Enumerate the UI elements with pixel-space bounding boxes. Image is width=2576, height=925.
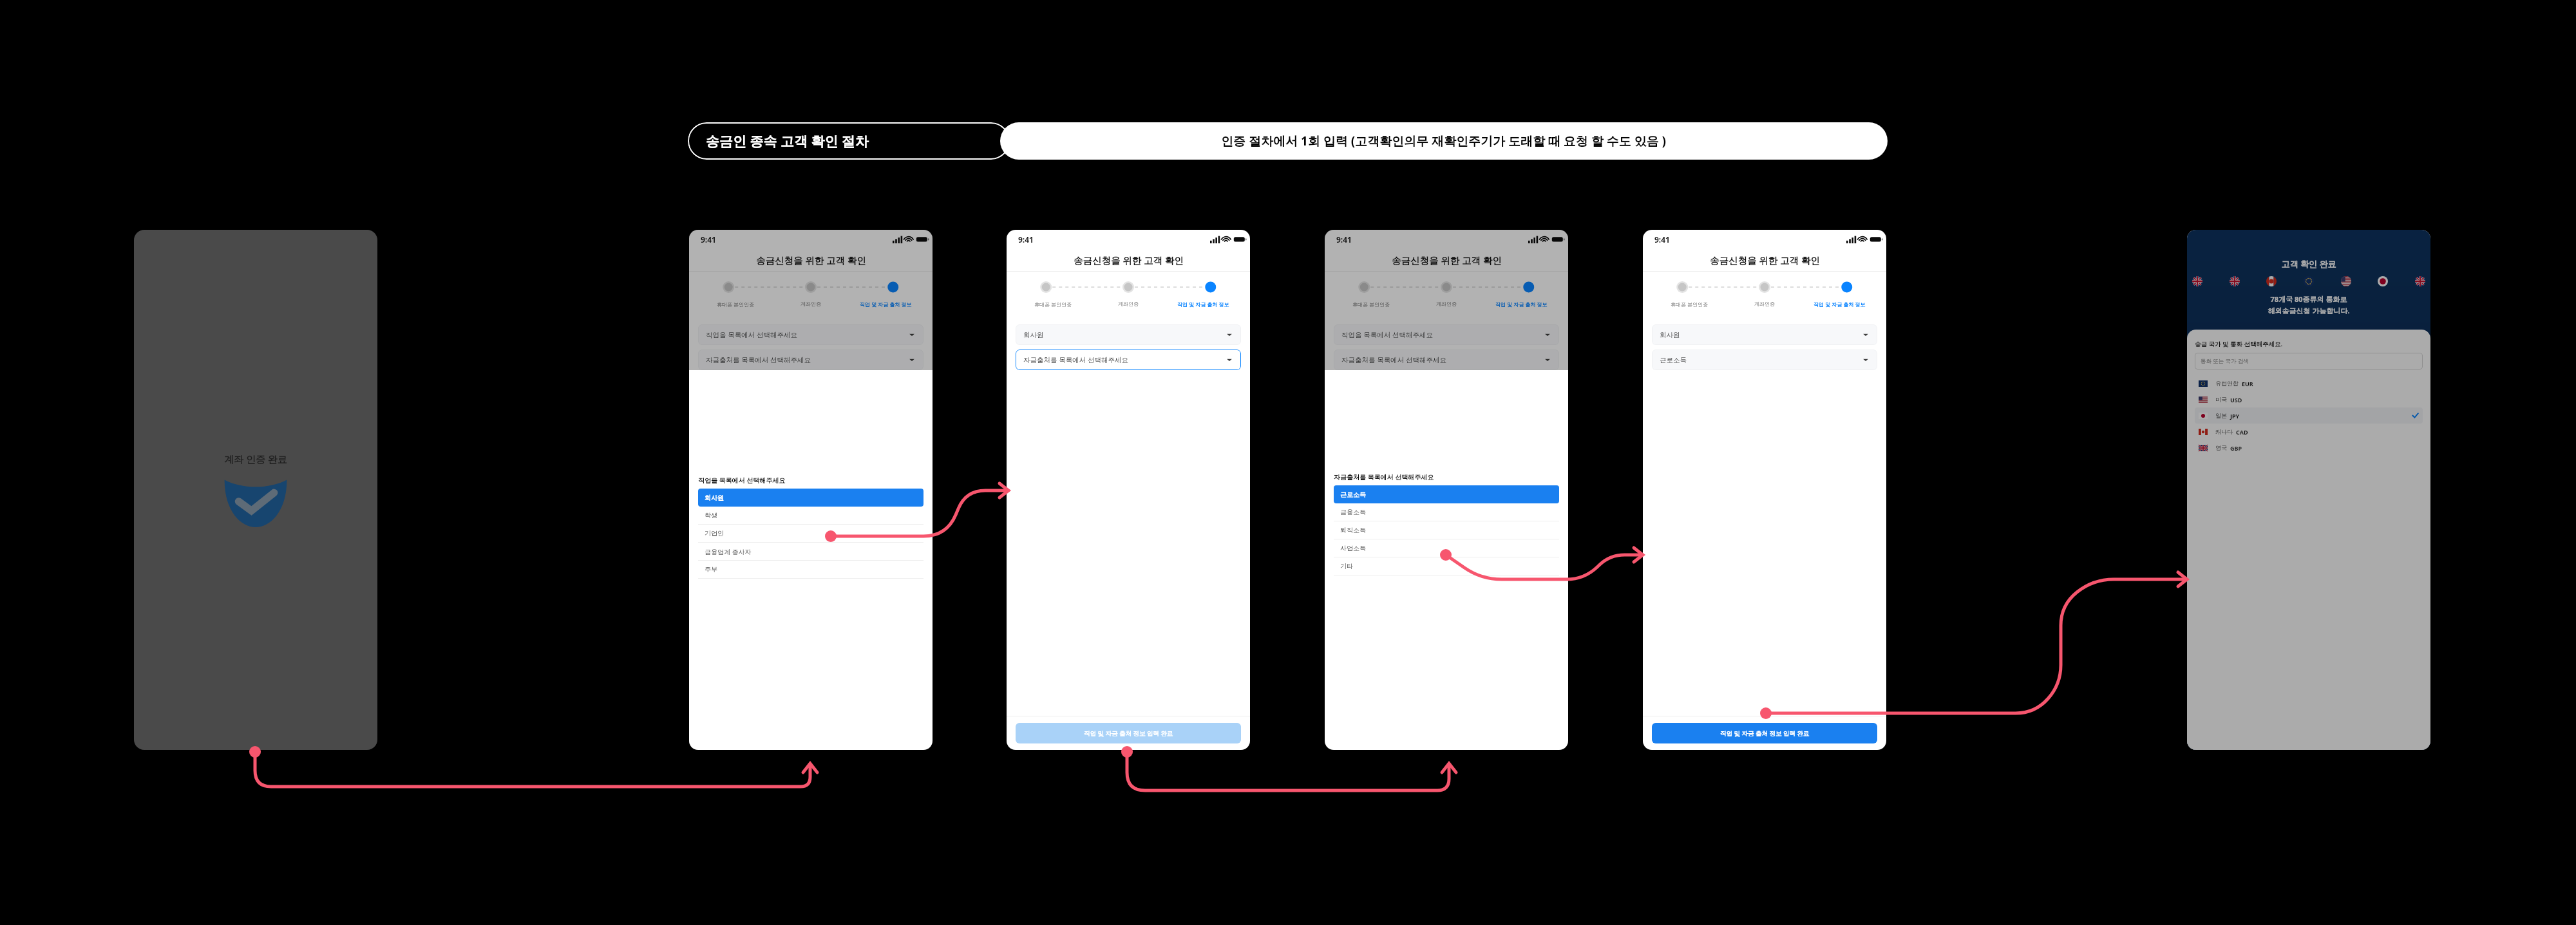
button[interactable]: 퇴직소득 xyxy=(1334,521,1559,539)
button[interactable]: 유럽연합 xyxy=(2195,375,2423,391)
staticText: 9:41 xyxy=(701,234,716,245)
staticText: 캐나다 xyxy=(2215,428,2233,435)
staticText: 78개국 80종류의 통화로 xyxy=(2187,294,2430,304)
button[interactable]: 기타 xyxy=(1334,557,1559,575)
button[interactable]: 기업인 xyxy=(698,525,923,543)
staticText: 영국 xyxy=(2215,444,2227,451)
staticText: 회사원 xyxy=(1023,331,1044,339)
staticText: 일본 xyxy=(2215,412,2227,419)
staticText: 송금신청을 위한 고객 확인 xyxy=(1710,254,1820,266)
staticText: 휴대폰 본인인증 xyxy=(717,301,755,308)
staticText: 유럽연합 xyxy=(2215,380,2239,387)
button[interactable]: 회사원 xyxy=(698,489,923,507)
button[interactable]: 송금인 종속 고객 확인 절차 xyxy=(688,122,1010,160)
staticText: 금융업계 종사자 xyxy=(705,547,752,556)
staticText: 송금 국가 및 통화 선택해주세요. xyxy=(2195,340,2283,348)
staticText: 해외송금신청 가능합니다. xyxy=(2187,306,2430,315)
staticText: JPY xyxy=(2230,412,2240,420)
button[interactable]: 금융업계 종사자 xyxy=(698,543,923,561)
staticText: 직업을 목록에서 선택해주세요 xyxy=(698,476,786,485)
button[interactable]: 미국 xyxy=(2195,391,2423,407)
staticText: 자금출처를 목록에서 선택해주세요 xyxy=(1341,355,1446,364)
button[interactable]: 캐나다 xyxy=(2195,424,2423,440)
staticText: 직업 및 자금 출처 정보 xyxy=(1814,301,1866,308)
staticText: 금융소득 xyxy=(1340,508,1366,516)
button[interactable]: 영국 xyxy=(2195,440,2423,456)
staticText: EUR xyxy=(2242,380,2253,388)
staticText: 9:41 xyxy=(1654,234,1670,245)
staticText: 주부 xyxy=(705,565,717,574)
button[interactable]: 일본 xyxy=(2195,407,2423,424)
staticText: USD xyxy=(2230,396,2242,404)
staticText: 기업인 xyxy=(705,529,724,537)
staticText: 9:41 xyxy=(1336,234,1352,245)
staticText: 직업 및 자금 출처 정보 xyxy=(860,301,912,308)
button[interactable]: 근로소득 xyxy=(1334,485,1559,503)
staticText: 사업소득 xyxy=(1340,544,1366,552)
staticText: 미국 xyxy=(2215,396,2227,403)
staticText: 기타 xyxy=(1340,562,1353,570)
staticText: 송금인 종속 고객 확인 절차 xyxy=(706,132,869,151)
button[interactable]: 직업 및 자금 출처 정보 입력 완료 xyxy=(1016,723,1241,743)
button[interactable]: 인증 절차에서 1회 입력 (고객확인의무 재확인주기가 도래할 때 요청 할 … xyxy=(1000,122,1888,160)
button[interactable]: 통화 또는 국가 검색 xyxy=(2195,353,2423,369)
staticText: 계좌 인증 완료 xyxy=(224,453,287,465)
staticText: 직업 및 자금 출처 정보 xyxy=(1495,301,1548,308)
button[interactable]: 학생 xyxy=(698,507,923,525)
staticText: 고객 확인 완료 xyxy=(2187,258,2430,270)
button[interactable]: 근로소득 xyxy=(1652,350,1877,370)
staticText: 회사원 xyxy=(1660,331,1680,339)
staticText: 근로소득 xyxy=(1660,356,1687,364)
staticText: 인증 절차에서 1회 입력 (고객확인의무 재확인주기가 도래할 때 요청 할 … xyxy=(1221,133,1667,149)
staticText: 계좌인증 xyxy=(1118,301,1139,307)
staticText: 계좌인증 xyxy=(800,301,821,307)
staticText: 학생 xyxy=(705,511,717,519)
staticText: 휴대폰 본인인증 xyxy=(1034,301,1072,308)
button[interactable]: 자금출처를 목록에서 선택해주세요 xyxy=(1334,350,1559,370)
staticText: GBP xyxy=(2230,444,2242,452)
staticText: 자금출처를 목록에서 선택해주세요 xyxy=(1023,355,1128,364)
staticText: 직업 및 자금 출처 정보 입력 완료 xyxy=(1084,729,1173,738)
staticText: 직업 및 자금 출처 정보 xyxy=(1177,301,1229,308)
staticText: 송금신청을 위한 고객 확인 xyxy=(756,254,866,266)
staticText: 휴대폰 본인인증 xyxy=(1671,301,1709,308)
staticText: 송금신청을 위한 고객 확인 xyxy=(1392,254,1502,266)
staticText: 계좌인증 xyxy=(1436,301,1457,307)
staticText: 송금신청을 위한 고객 확인 xyxy=(1074,254,1184,266)
staticText: 근로소득 xyxy=(1340,491,1366,499)
staticText: 자금출처를 목록에서 선택해주세요 xyxy=(706,355,811,364)
staticText: 통화 또는 국가 검색 xyxy=(2201,357,2249,365)
staticText: 자금출처를 목록에서 선택해주세요 xyxy=(1334,472,1434,481)
staticText: 9:41 xyxy=(1018,234,1034,245)
button[interactable]: 사업소득 xyxy=(1334,539,1559,557)
staticText: 퇴직소득 xyxy=(1340,526,1366,534)
staticText: 직업을 목록에서 선택해주세요 xyxy=(1341,330,1433,339)
staticText: 직업을 목록에서 선택해주세요 xyxy=(706,330,797,339)
button[interactable]: 주부 xyxy=(698,561,923,579)
button[interactable]: 자금출처를 목록에서 선택해주세요 xyxy=(1016,350,1241,370)
button[interactable]: 직업을 목록에서 선택해주세요 xyxy=(698,324,923,345)
staticText: 직업 및 자금 출처 정보 입력 완료 xyxy=(1720,729,1810,738)
button[interactable]: 자금출처를 목록에서 선택해주세요 xyxy=(698,350,923,370)
button[interactable]: 직업 및 자금 출처 정보 입력 완료 xyxy=(1652,723,1877,743)
button[interactable]: 회사원 xyxy=(1016,324,1241,345)
staticText: 회사원 xyxy=(705,494,724,502)
staticText: CAD xyxy=(2236,428,2248,436)
button[interactable]: 직업을 목록에서 선택해주세요 xyxy=(1334,324,1559,345)
staticText: 계좌인증 xyxy=(1754,301,1775,307)
button[interactable]: 금융소득 xyxy=(1334,503,1559,521)
staticText: 휴대폰 본인인증 xyxy=(1352,301,1390,308)
button[interactable]: 회사원 xyxy=(1652,324,1877,345)
